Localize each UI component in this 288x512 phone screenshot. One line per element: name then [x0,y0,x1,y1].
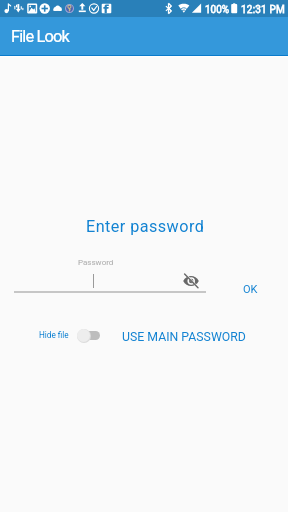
staticText: USE MAIN PASSWORD [122,330,246,344]
staticText: 12:31 PM [241,4,286,16]
staticText: 100% [205,4,230,16]
button[interactable]: OK [232,276,268,302]
staticText: OK [243,283,258,296]
button[interactable]: USE MAIN PASSWORD [118,326,250,348]
staticText: Enter password [86,217,205,236]
staticText: Hide file [39,330,69,340]
button[interactable]: Hide file [39,324,100,346]
staticText: File Look [11,27,69,46]
staticText: Password [78,258,114,267]
button[interactable]: Show password [181,271,201,291]
